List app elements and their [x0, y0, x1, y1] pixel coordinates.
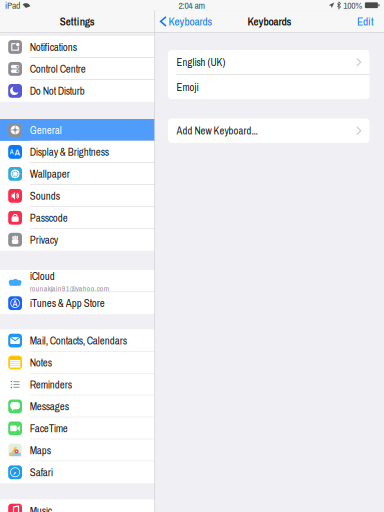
- button[interactable]: Notes: [0, 351, 154, 373]
- staticText: Reminders: [30, 377, 72, 392]
- staticText: A: [10, 147, 14, 156]
- staticText: Wallpaper: [30, 167, 70, 181]
- button[interactable]: Add New Keyboard...: [168, 118, 370, 143]
- staticText: Privacy: [30, 232, 58, 247]
- staticText: Add New Keyboard...: [176, 124, 257, 138]
- staticText: Edit: [357, 14, 374, 29]
- staticText: Settings: [60, 14, 95, 29]
- button[interactable]: Sounds: [0, 185, 154, 207]
- button[interactable]: Maps: [0, 439, 154, 461]
- button[interactable]: A: [0, 141, 154, 163]
- button[interactable]: Wallpaper: [0, 163, 154, 185]
- button[interactable]: Safari: [0, 461, 154, 483]
- staticText: Display & Brightness: [30, 145, 109, 159]
- staticText: Passcode: [30, 210, 68, 225]
- button[interactable]: Messages: [0, 395, 154, 417]
- button[interactable]: A: [0, 292, 154, 314]
- staticText: Do Not Disturb: [30, 84, 85, 98]
- button[interactable]: Edit: [357, 10, 384, 32]
- button[interactable]: FaceTime: [0, 417, 154, 439]
- staticText: 2:04 am: [178, 0, 205, 12]
- button[interactable]: Mail, Contacts, Calendars: [0, 330, 154, 351]
- button[interactable]: Keyboards: [155, 10, 212, 32]
- button[interactable]: Control Centre: [0, 58, 154, 80]
- staticText: Notifications: [30, 40, 77, 54]
- button[interactable]: Emoji: [168, 75, 370, 99]
- staticText: FaceTime: [30, 421, 68, 436]
- button[interactable]: Privacy: [0, 229, 154, 251]
- button[interactable]: Do Not Disturb: [0, 80, 154, 102]
- staticText: Maps: [30, 443, 51, 458]
- staticText: General: [30, 123, 62, 137]
- staticText: rounakjain91@yahoo.com: [30, 283, 109, 294]
- staticText: Control Centre: [30, 62, 86, 76]
- staticText: Music: [30, 503, 52, 512]
- staticText: Keyboards: [247, 14, 291, 29]
- button[interactable]: Reminders: [0, 373, 154, 395]
- staticText: English (UK): [176, 55, 225, 69]
- staticText: Messages: [30, 399, 69, 414]
- button[interactable]: Notifications: [0, 36, 154, 58]
- staticText: Safari: [30, 465, 53, 480]
- button[interactable]: iCloud: [0, 270, 154, 292]
- staticText: Notes: [30, 355, 52, 370]
- button[interactable]: Passcode: [0, 207, 154, 229]
- button[interactable]: General: [0, 119, 154, 141]
- staticText: iTunes & App Store: [30, 296, 105, 310]
- staticText: Emoji: [176, 80, 198, 94]
- button[interactable]: English (UK): [168, 50, 370, 74]
- staticText: Mail, Contacts, Calendars: [30, 333, 127, 348]
- button[interactable]: Music: [0, 500, 154, 512]
- staticText: Keyboards: [168, 14, 212, 29]
- staticText: 100%: [343, 0, 362, 12]
- staticText: iPad: [5, 0, 20, 12]
- staticText: iCloud: [30, 269, 55, 283]
- staticText: A: [14, 145, 20, 158]
- staticText: Sounds: [30, 188, 60, 203]
- staticText: A: [13, 297, 18, 309]
